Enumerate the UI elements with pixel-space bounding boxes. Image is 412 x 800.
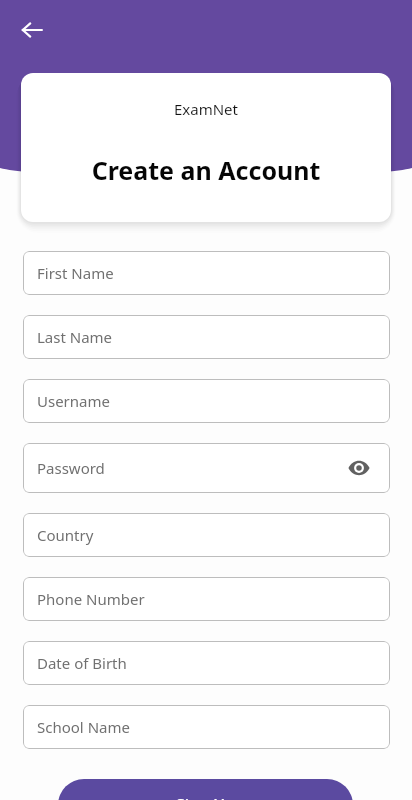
button[interactable]: Username	[23, 379, 390, 423]
button[interactable]: Show password	[346, 455, 372, 481]
staticText: First Name	[37, 263, 114, 283]
button[interactable]: School Name	[23, 705, 390, 749]
button[interactable]: Last Name	[23, 315, 390, 359]
button[interactable]: Sign Up	[58, 779, 353, 800]
staticText: Last Name	[37, 327, 113, 347]
button[interactable]: Country	[23, 513, 390, 557]
staticText: Date of Birth	[37, 653, 127, 673]
staticText: Password	[37, 458, 105, 478]
staticText: Phone Number	[37, 589, 145, 609]
button[interactable]: Password	[23, 443, 390, 493]
staticText: Country	[37, 525, 94, 545]
button[interactable]: Phone Number	[23, 577, 390, 621]
staticText: Create an Account	[21, 153, 391, 187]
staticText: Username	[37, 391, 110, 411]
staticText: ExamNet	[21, 99, 391, 119]
button[interactable]: First Name	[23, 251, 390, 295]
staticText: Sign Up	[176, 794, 235, 800]
button[interactable]: Back	[12, 10, 52, 50]
staticText: School Name	[37, 717, 130, 737]
button[interactable]: Date of Birth	[23, 641, 390, 685]
